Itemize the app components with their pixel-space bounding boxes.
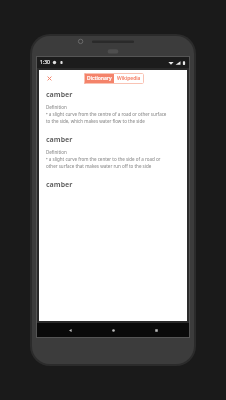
staticText: Dictionary [87,75,112,82]
button[interactable]: Dictionary [84,73,114,84]
staticText: camber [46,90,73,100]
button[interactable]: Recents [146,323,166,337]
staticText: to the side, which makes water flow to t… [46,118,145,124]
button[interactable]: Back [60,323,80,337]
staticText: Definition [46,104,67,110]
staticText: 1:30 [40,59,50,66]
button[interactable]: Home [103,323,123,337]
button[interactable]: Close [44,73,55,84]
staticText: Wikipedia [117,75,141,82]
staticText: • a slight curve from the centre of a ro… [46,111,167,117]
button[interactable]: Wikipedia [114,73,144,84]
staticText: camber [46,180,73,190]
staticText: camber [46,135,73,145]
staticText: • a slight curve from the center to the … [46,156,161,162]
staticText: other surface that makes water run off t… [46,163,152,169]
staticText: Definition [46,149,67,155]
